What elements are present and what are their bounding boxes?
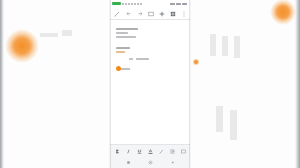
button[interactable]: Selection handle <box>116 66 121 71</box>
button[interactable]: Text color <box>146 147 154 155</box>
button[interactable]: Italic <box>124 147 132 155</box>
button[interactable]: More options <box>179 9 188 18</box>
button[interactable]: Highlight <box>157 147 165 155</box>
button[interactable]: More formatting <box>179 147 187 155</box>
button[interactable]: Edit <box>112 9 121 18</box>
button[interactable]: Redo <box>135 9 144 18</box>
button[interactable]: Bold <box>113 147 121 155</box>
button[interactable]: Undo <box>124 9 133 18</box>
button[interactable]: Home <box>146 158 154 166</box>
button[interactable]: Insert <box>157 9 166 18</box>
button[interactable]: Underline <box>135 147 143 155</box>
button[interactable]: Format <box>168 9 177 18</box>
button[interactable]: Comment <box>146 9 155 18</box>
button[interactable]: Indent <box>168 147 176 155</box>
button[interactable]: Recents <box>168 158 176 166</box>
button[interactable]: Back <box>124 158 132 166</box>
